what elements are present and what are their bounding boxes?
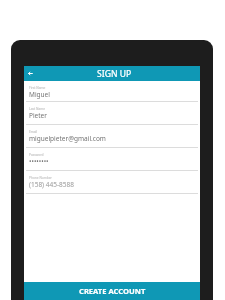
staticText: First Name: [29, 86, 46, 90]
button[interactable]: CREATE ACCOUNT: [24, 282, 200, 300]
staticText: (158) 445-8588: [29, 180, 74, 189]
button[interactable]: First Name: [26, 81, 198, 102]
staticText: miguelpieter@gmail.com: [29, 134, 106, 143]
button[interactable]: Password: [26, 148, 198, 171]
staticText: Email: [29, 130, 38, 134]
button[interactable]: Email: [26, 125, 198, 148]
staticText: SIGN UP: [97, 68, 132, 80]
staticText: Last Name: [29, 107, 45, 111]
button[interactable]: Phone Number: [26, 171, 198, 194]
staticText: Pieter: [29, 111, 47, 120]
button[interactable]: Last Name: [26, 102, 198, 125]
staticText: ••••••••: [29, 157, 49, 166]
staticText: Phone Number: [29, 176, 52, 180]
staticText: Miguel: [29, 90, 50, 99]
staticText: CREATE ACCOUNT: [79, 286, 146, 296]
button[interactable]: Back: [25, 68, 36, 79]
staticText: Password: [29, 153, 44, 157]
